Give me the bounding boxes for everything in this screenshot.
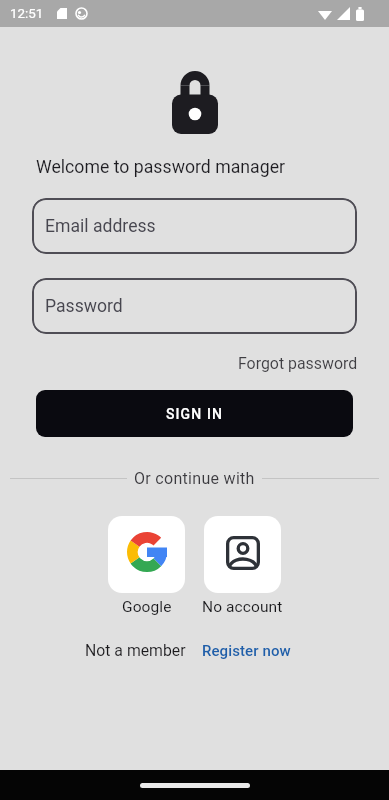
- staticText: Or continue with: [134, 469, 255, 488]
- button[interactable]: [204, 516, 281, 593]
- button[interactable]: [108, 516, 185, 593]
- button[interactable]: Email address: [32, 198, 357, 254]
- staticText: Welcome to password manager: [36, 157, 389, 178]
- staticText: Google: [122, 598, 172, 616]
- button[interactable]: Password: [32, 278, 357, 334]
- staticText: 12:51: [10, 6, 44, 22]
- staticText: Email address: [45, 216, 156, 237]
- button[interactable]: SIGN IN: [36, 390, 353, 437]
- button[interactable]: Forgot password: [238, 354, 358, 373]
- staticText: No account: [202, 598, 283, 616]
- staticText: SIGN IN: [166, 406, 223, 422]
- staticText: Not a member: [85, 641, 186, 660]
- button[interactable]: Register now: [202, 642, 291, 660]
- staticText: Password: [45, 296, 123, 317]
